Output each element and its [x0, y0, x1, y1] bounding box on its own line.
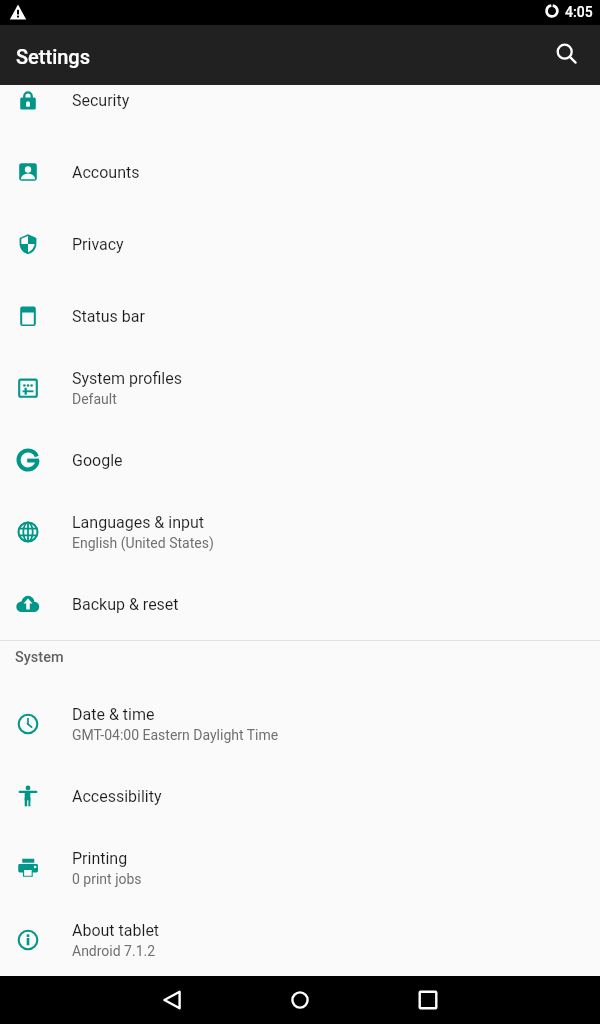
- staticText: Printing: [72, 849, 128, 868]
- staticText: Accessibility: [72, 787, 162, 806]
- button[interactable]: About tablet: [0, 904, 600, 976]
- button[interactable]: Accounts: [0, 136, 600, 208]
- button[interactable]: Accessibility: [0, 760, 600, 832]
- staticText: Settings: [16, 45, 91, 68]
- staticText: Google: [72, 451, 123, 470]
- button[interactable]: Privacy: [0, 208, 600, 280]
- button[interactable]: Search: [543, 30, 591, 78]
- staticText: About tablet: [72, 921, 160, 940]
- button[interactable]: Home: [276, 976, 324, 1024]
- staticText: Languages & input: [72, 513, 205, 532]
- staticText: Privacy: [72, 235, 124, 254]
- staticText: English (United States): [72, 535, 214, 551]
- button[interactable]: Google: [0, 424, 600, 496]
- button[interactable]: Printing: [0, 832, 600, 904]
- staticText: Date & time: [72, 705, 155, 724]
- staticText: Status bar: [72, 307, 145, 326]
- staticText: 4:05: [565, 4, 593, 20]
- button[interactable]: Recent apps: [404, 976, 452, 1024]
- staticText: 0 print jobs: [72, 871, 142, 887]
- staticText: Android 7.1.2: [72, 943, 156, 959]
- staticText: System profiles: [72, 369, 182, 388]
- staticText: Backup & reset: [72, 595, 179, 614]
- button[interactable]: Security: [0, 85, 600, 136]
- staticText: Security: [72, 91, 130, 110]
- button[interactable]: Date & time: [0, 688, 600, 760]
- button[interactable]: Status bar: [0, 280, 600, 352]
- button[interactable]: Back: [148, 976, 196, 1024]
- staticText: System: [15, 649, 64, 666]
- staticText: GMT-04:00 Eastern Daylight Time: [72, 727, 279, 743]
- button[interactable]: System profiles: [0, 352, 600, 424]
- staticText: Accounts: [72, 163, 140, 182]
- staticText: Default: [72, 391, 117, 407]
- button[interactable]: Backup & reset: [0, 568, 600, 640]
- button[interactable]: Languages & input: [0, 496, 600, 568]
